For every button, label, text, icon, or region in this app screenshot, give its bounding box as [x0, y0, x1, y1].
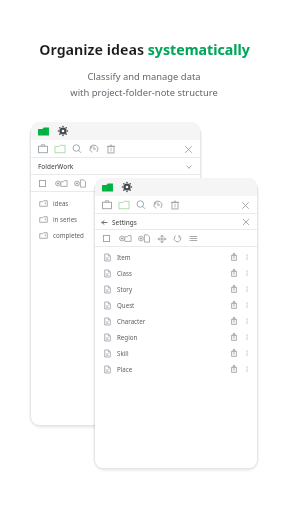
button[interactable]: More options for Character [242, 316, 252, 326]
button[interactable]: New folder [117, 233, 132, 244]
button[interactable]: Export Class [229, 268, 239, 278]
staticText: Skill [117, 349, 229, 357]
button[interactable]: Export Place [229, 364, 239, 374]
button[interactable]: Projects [101, 199, 113, 211]
staticText: ideas [53, 199, 69, 207]
button[interactable]: Close [240, 200, 251, 211]
button[interactable]: Project folder [101, 181, 114, 194]
staticText: Organize ideas systematically [39, 40, 250, 59]
button[interactable]: Export Quest [229, 300, 239, 310]
button[interactable]: More options for Region [242, 332, 252, 342]
staticText: Region [117, 333, 229, 341]
button[interactable]: Export Character [229, 316, 239, 326]
button[interactable]: New note [72, 178, 87, 189]
button[interactable]: New note [136, 233, 151, 244]
button[interactable]: Settings [121, 181, 133, 193]
button[interactable]: Select all [101, 233, 112, 244]
button[interactable]: Export Skill [229, 348, 239, 358]
button[interactable]: Settings [95, 214, 257, 230]
button[interactable]: Project folder [37, 125, 50, 138]
button[interactable]: More options for Place [242, 364, 252, 374]
button[interactable]: Settings [57, 125, 69, 137]
button[interactable]: Search [71, 143, 83, 155]
button[interactable]: More options for Story [242, 284, 252, 294]
button[interactable]: Folders [54, 143, 66, 155]
button[interactable]: Refresh [172, 233, 183, 244]
button[interactable]: completed [31, 227, 200, 243]
staticText: Quest [117, 301, 229, 309]
staticText: in series [53, 215, 78, 223]
button[interactable]: Place [95, 361, 257, 377]
staticText: Item [117, 253, 229, 261]
button[interactable]: Story [95, 281, 257, 297]
staticText: Place [117, 365, 229, 373]
button[interactable]: Class [95, 265, 257, 281]
button[interactable]: Select all [37, 178, 48, 189]
button[interactable]: Folders [118, 199, 130, 211]
button[interactable]: Search [135, 199, 147, 211]
staticText: Story [117, 285, 229, 293]
button[interactable]: More options for Class [242, 268, 252, 278]
button[interactable]: More options for Skill [242, 348, 252, 358]
staticText: Classify and manage data [87, 70, 201, 83]
button[interactable]: Region [95, 329, 257, 345]
button[interactable]: View options [188, 233, 199, 244]
button[interactable]: ideas [31, 195, 200, 211]
button[interactable]: Character [95, 313, 257, 329]
staticText: Character [117, 317, 229, 325]
button[interactable]: Trash [169, 199, 181, 211]
button[interactable]: Quest [95, 297, 257, 313]
staticText: FolderWork [38, 162, 74, 171]
button[interactable]: Skill [95, 345, 257, 361]
button[interactable]: More options for Quest [242, 300, 252, 310]
button[interactable]: New folder [53, 178, 68, 189]
button[interactable]: Trash [105, 143, 117, 155]
button[interactable]: History [152, 199, 164, 211]
staticText: Class [117, 269, 229, 277]
staticText: completed [53, 231, 84, 239]
button[interactable]: Export Story [229, 284, 239, 294]
button[interactable]: More options for Item [242, 252, 252, 262]
button[interactable]: Projects [37, 143, 49, 155]
button[interactable]: in series [31, 211, 200, 227]
staticText: with project-folder-note structure [70, 86, 218, 99]
button[interactable]: Item [95, 249, 257, 265]
button[interactable]: Export Region [229, 332, 239, 342]
button[interactable]: Close [183, 144, 194, 155]
button[interactable]: Export Item [229, 252, 239, 262]
button[interactable]: Close settings [241, 217, 251, 227]
button[interactable]: Expand [184, 162, 194, 172]
button[interactable]: Move [156, 233, 168, 245]
staticText: Settings [112, 218, 137, 227]
button[interactable]: History [88, 143, 100, 155]
